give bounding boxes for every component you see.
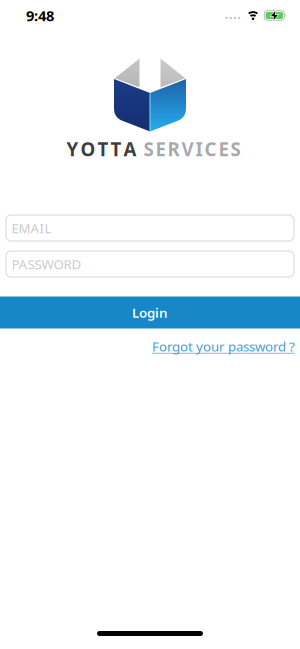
staticText: EMAIL (11, 219, 51, 237)
staticText: Y O T T A (66, 137, 136, 161)
button[interactable]: EMAIL (0, 215, 300, 241)
staticText: Login (132, 304, 168, 321)
button[interactable]: PASSWORD (0, 251, 300, 277)
staticText: Forgot your password ? (152, 337, 295, 355)
button[interactable]: Forgot your password ? (152, 337, 295, 355)
button[interactable]: Login (0, 296, 300, 328)
staticText: S E R V I C E S (143, 137, 240, 161)
staticText: 9:48 (26, 6, 54, 25)
staticText: PASSWORD (11, 255, 81, 273)
